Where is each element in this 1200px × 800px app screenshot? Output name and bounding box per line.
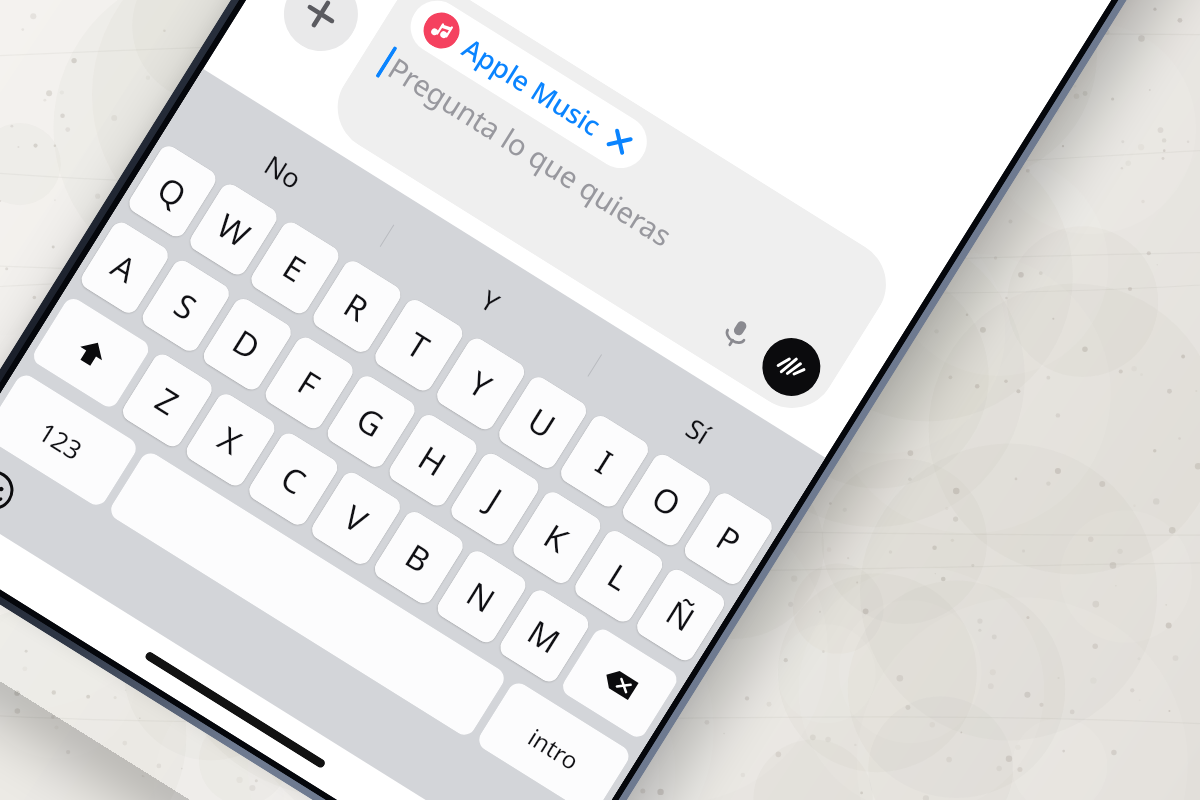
button[interactable]: Quitar Apple Music: [602, 124, 637, 160]
staticText: G: [348, 396, 393, 448]
button[interactable]: T: [371, 296, 466, 395]
button[interactable]: Apple Music: [401, 0, 657, 178]
button[interactable]: No: [163, 79, 403, 263]
button[interactable]: Ñ: [633, 565, 728, 664]
staticText: H: [410, 435, 455, 486]
staticText: L: [599, 553, 638, 601]
button[interactable]: Y: [433, 334, 528, 433]
staticText: O: [644, 475, 689, 527]
button[interactable]: B: [371, 508, 467, 607]
button[interactable]: V: [308, 469, 404, 568]
button[interactable]: 123: [0, 371, 140, 509]
button[interactable]: C: [245, 429, 341, 529]
button[interactable]: Q: [125, 142, 220, 240]
button[interactable]: Tecla: [30, 295, 152, 411]
button[interactable]: Dictado: [700, 296, 774, 370]
staticText: V: [335, 494, 376, 543]
button[interactable]: O: [619, 450, 714, 549]
button[interactable]: M: [496, 586, 592, 686]
staticText: R: [336, 282, 377, 332]
staticText: P: [708, 515, 749, 564]
staticText: Sí: [679, 409, 717, 452]
staticText: U: [520, 397, 565, 449]
button[interactable]: R: [309, 257, 405, 356]
staticText: Y: [474, 281, 507, 321]
staticText: M: [519, 609, 569, 663]
staticText: N: [458, 571, 504, 623]
button[interactable]: H: [385, 411, 481, 510]
button[interactable]: intro: [475, 679, 633, 800]
staticText: W: [209, 203, 259, 257]
button[interactable]: Espacio: [107, 449, 508, 739]
staticText: Apple Music: [456, 29, 609, 144]
button[interactable]: S: [138, 257, 233, 355]
staticText: B: [397, 533, 440, 583]
button[interactable]: A: [77, 218, 172, 317]
button[interactable]: K: [509, 488, 604, 587]
button[interactable]: Sí: [578, 339, 819, 522]
button[interactable]: L: [571, 527, 666, 626]
staticText: F: [290, 360, 329, 407]
staticText: T: [398, 322, 438, 370]
button[interactable]: X: [182, 390, 279, 490]
staticText: S: [166, 282, 206, 331]
staticText: intro: [522, 720, 586, 777]
staticText: K: [536, 513, 577, 563]
staticText: C: [273, 455, 314, 504]
button[interactable]: W: [186, 180, 281, 279]
button[interactable]: P: [681, 489, 776, 588]
button[interactable]: Añadir: [270, 0, 372, 65]
staticText: I: [588, 440, 622, 484]
button[interactable]: D: [200, 295, 295, 394]
button[interactable]: Emoji: [0, 454, 30, 526]
staticText: E: [275, 244, 315, 292]
staticText: A: [103, 243, 146, 293]
button[interactable]: Y: [370, 209, 611, 392]
staticText: Q: [149, 166, 195, 218]
button[interactable]: J: [447, 449, 543, 548]
staticText: Pregunta lo que quieras: [381, 48, 679, 255]
staticText: Ñ: [658, 590, 704, 642]
button[interactable]: Tecla: [559, 625, 681, 741]
staticText: No: [258, 146, 309, 197]
button[interactable]: F: [261, 333, 357, 432]
button[interactable]: Apple Music: [321, 0, 902, 425]
staticText: Z: [147, 377, 187, 425]
staticText: X: [210, 416, 251, 465]
button[interactable]: I: [557, 412, 652, 511]
button[interactable]: G: [323, 372, 419, 471]
staticText: J: [479, 478, 511, 521]
button[interactable]: N: [433, 547, 530, 646]
staticText: 123: [32, 414, 89, 467]
button[interactable]: E: [247, 218, 343, 317]
staticText: D: [224, 319, 269, 370]
button[interactable]: U: [495, 373, 590, 472]
button[interactable]: Z: [119, 350, 216, 450]
staticText: Y: [460, 360, 500, 408]
button[interactable]: Siri: [751, 327, 831, 407]
